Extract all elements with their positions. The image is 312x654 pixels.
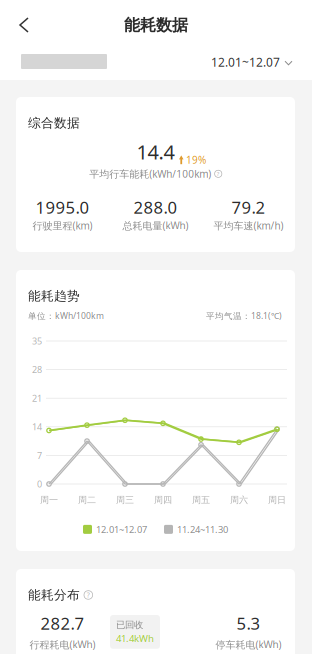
staticText: 周五 [192,494,210,506]
staticText: 周六 [230,494,248,506]
staticText: 周三 [116,494,134,506]
staticText: 35 [32,335,42,347]
staticText: ? [87,590,90,600]
staticText: 综合数据 [28,115,80,131]
staticText: 能耗数据 [124,15,188,35]
staticText: 21 [32,392,42,404]
staticText: 周二 [78,494,96,506]
staticText: 0 [37,478,42,490]
staticText: 7 [37,449,42,461]
staticText: 已回收 [116,619,143,631]
staticText: 总耗电量(kWh) [122,219,188,232]
staticText: 14.4 [136,138,174,165]
staticText: 平均气温：18.1(℃) [206,310,282,322]
staticText: 能耗趋势 [28,288,80,304]
staticText: 单位：kWh/100km [28,310,104,322]
staticText: 周一 [40,494,58,506]
staticText: 平均行车能耗(kWh/100km) [89,167,211,181]
staticText: 1995.0 [35,196,89,219]
staticText: 平均车速(km/h) [213,219,283,232]
staticText: 19% [186,153,206,167]
staticText: 12.01~12.07 [211,54,280,70]
button[interactable]: 12.01~12.07 [211,52,292,72]
staticText: 41.4kWh [116,632,154,645]
staticText: 12.01~12.07 [96,523,147,536]
staticText: 停车耗电(kWh) [215,638,281,651]
button[interactable]: Back [7,7,41,43]
staticText: 79.2 [231,196,265,219]
staticText: ? [217,170,220,178]
staticText: 288.0 [133,196,177,219]
staticText: 周日 [268,494,286,506]
staticText: 能耗分布 [28,587,80,603]
staticText: 行程耗电(kWh) [29,638,95,651]
staticText: 14 [32,421,42,433]
staticText: 28 [32,363,42,376]
staticText: 周四 [154,494,172,506]
staticText: 282.7 [40,612,84,635]
staticText: 行驶里程(km) [32,219,92,232]
staticText: 11.24~11.30 [177,523,228,536]
staticText: 5.3 [236,612,260,635]
